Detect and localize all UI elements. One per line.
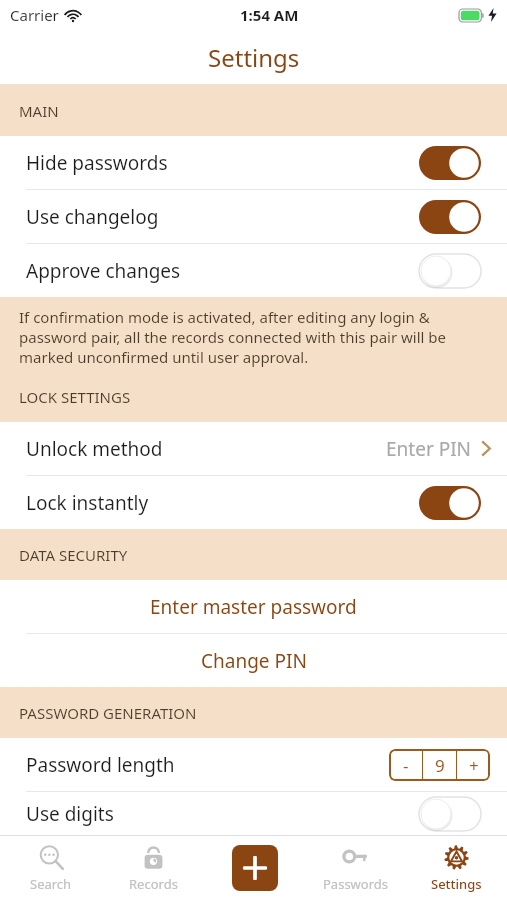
- staticText: Search: [30, 875, 72, 893]
- button[interactable]: Hide passwords: [0, 136, 507, 189]
- staticText: +: [469, 754, 479, 777]
- staticText: If confirmation mode is activated, after…: [19, 307, 488, 367]
- staticText: LOCK SETTINGS: [19, 387, 131, 407]
- staticText: Settings: [208, 41, 300, 74]
- button[interactable]: Use changelog: [0, 190, 507, 243]
- button[interactable]: Settings: [406, 836, 507, 900]
- button[interactable]: Unlock method: [0, 422, 507, 475]
- staticText: Lock instantly: [26, 490, 149, 516]
- staticText: Password length: [26, 752, 175, 778]
- staticText: Settings: [431, 875, 482, 893]
- staticText: Enter PIN: [386, 436, 472, 462]
- staticText: Hide passwords: [26, 150, 168, 176]
- button[interactable]: Lock instantly: [0, 476, 507, 529]
- staticText: 9: [435, 754, 445, 777]
- button[interactable]: Increase: [457, 749, 490, 781]
- button[interactable]: Enter master password: [0, 580, 507, 633]
- staticText: Use changelog: [26, 204, 159, 230]
- staticText: Records: [129, 875, 178, 893]
- staticText: Approve changes: [26, 258, 181, 284]
- button[interactable]: Search: [0, 836, 102, 900]
- staticText: Change PIN: [201, 648, 307, 674]
- staticText: Passwords: [323, 875, 389, 893]
- button[interactable]: Records: [102, 836, 204, 900]
- button[interactable]: Change PIN: [0, 634, 507, 687]
- staticText: Carrier: [10, 5, 59, 25]
- staticText: Enter master password: [150, 594, 357, 620]
- staticText: PASSWORD GENERATION: [19, 703, 197, 723]
- staticText: Use digits: [26, 801, 114, 827]
- button[interactable]: Add: [204, 836, 305, 900]
- button[interactable]: Decrease: [389, 749, 422, 781]
- staticText: DATA SECURITY: [19, 545, 128, 565]
- staticText: Unlock method: [26, 436, 163, 462]
- staticText: 1:54 AM: [240, 5, 299, 25]
- button[interactable]: Approve changes: [0, 244, 507, 297]
- button[interactable]: Passwords: [305, 836, 406, 900]
- button[interactable]: Use digits: [0, 792, 507, 835]
- staticText: -: [403, 754, 409, 777]
- staticText: MAIN: [19, 101, 59, 121]
